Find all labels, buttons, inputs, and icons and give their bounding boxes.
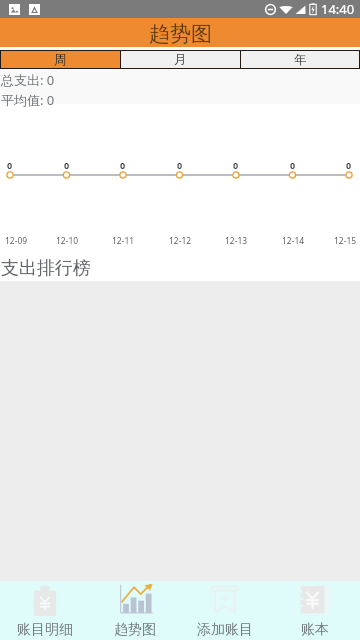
staticText: 0 — [120, 159, 126, 171]
staticText: 12-14 — [282, 235, 305, 247]
staticText: 12-11 — [112, 235, 135, 247]
staticText: 0 — [177, 159, 183, 171]
staticText: 12-15 — [334, 235, 357, 247]
button[interactable]: 周 — [0, 50, 120, 69]
button[interactable]: 账本 — [270, 581, 360, 640]
staticText: 12-10 — [56, 235, 79, 247]
button[interactable]: 添加账目 — [180, 581, 270, 640]
staticText: 添加账目 — [197, 621, 253, 639]
staticText: 14:40 — [321, 0, 355, 18]
button[interactable]: 账目明细 — [0, 581, 90, 640]
staticText: 周 — [54, 52, 67, 68]
staticText: 0 — [290, 159, 296, 171]
staticText: 年 — [294, 52, 307, 68]
button[interactable]: 月 — [120, 50, 240, 69]
staticText: 账本 — [301, 621, 329, 639]
staticText: 月 — [174, 52, 187, 68]
staticText: 12-09 — [5, 235, 28, 247]
staticText: 总支出: 0 — [1, 71, 55, 89]
staticText: 0 — [233, 159, 239, 171]
staticText: 账目明细 — [17, 621, 73, 639]
button[interactable]: 趋势图 — [90, 581, 180, 640]
staticText: 支出排行榜 — [1, 257, 91, 280]
staticText: 0 — [346, 159, 352, 171]
staticText: 平均值: 0 — [1, 91, 55, 109]
staticText: 趋势图 — [149, 21, 212, 47]
button[interactable]: 年 — [240, 50, 360, 69]
staticText: 0 — [64, 159, 70, 171]
staticText: 12-12 — [169, 235, 192, 247]
staticText: 12-13 — [225, 235, 248, 247]
staticText: 趋势图 — [114, 621, 156, 639]
staticText: 0 — [7, 159, 13, 171]
